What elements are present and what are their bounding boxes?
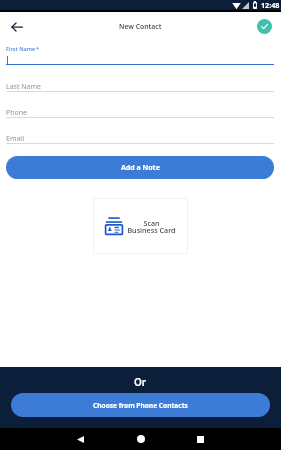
staticText: New Contact <box>119 22 162 31</box>
staticText: * <box>36 45 40 53</box>
staticText: Or <box>134 375 147 389</box>
staticText: Scan Business Card <box>127 218 176 235</box>
button[interactable]: Scan Business Card <box>93 198 188 254</box>
staticText: 12:48 <box>261 0 280 10</box>
staticText: Choose from Phone Contacts <box>93 401 188 410</box>
button[interactable]: Add a Note <box>6 156 274 179</box>
staticText: Phone <box>6 108 28 118</box>
staticText: First Name <box>6 45 36 53</box>
staticText: Add a Note <box>121 163 160 173</box>
button[interactable]: Save contact <box>257 19 272 34</box>
button[interactable]: Phone <box>6 104 274 118</box>
button[interactable]: Back <box>60 428 101 450</box>
button[interactable]: Last Name <box>6 78 274 92</box>
button[interactable]: Email <box>6 130 274 144</box>
staticText: Last Name <box>6 82 42 92</box>
staticText: Email <box>6 134 24 144</box>
button[interactable]: Choose from Phone Contacts <box>11 393 270 417</box>
button[interactable]: Back <box>5 15 28 38</box>
button[interactable]: Recent apps <box>180 428 221 450</box>
button[interactable]: Home <box>120 428 161 450</box>
